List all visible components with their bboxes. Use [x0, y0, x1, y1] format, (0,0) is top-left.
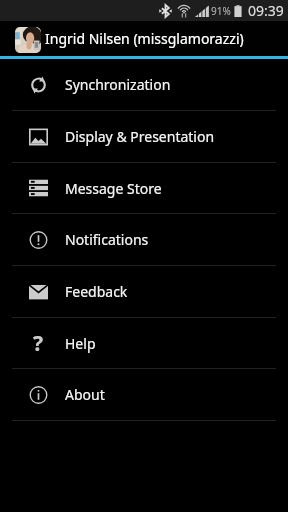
button[interactable]: Display & Presentation [0, 111, 288, 162]
button[interactable]: About [0, 369, 288, 420]
staticText: ? [33, 329, 44, 358]
button[interactable]: Feedback [0, 266, 288, 317]
staticText: Synchronization [65, 75, 171, 94]
staticText: Ingrid Nilsen (missglamorazzi) [45, 29, 244, 48]
staticText: Notifications [65, 230, 149, 249]
button[interactable]: Notifications [0, 214, 288, 265]
staticText: 91% [211, 4, 231, 18]
staticText: 09:39 [248, 1, 284, 20]
button[interactable]: ? [0, 318, 288, 368]
staticText: Display & Presentation [65, 127, 215, 146]
button[interactable]: Synchronization [0, 59, 288, 110]
button[interactable]: Message Store [0, 163, 288, 213]
staticText: Help [65, 334, 96, 353]
staticText: Feedback [65, 282, 128, 301]
staticText: Message Store [65, 179, 162, 198]
staticText: About [65, 385, 105, 404]
